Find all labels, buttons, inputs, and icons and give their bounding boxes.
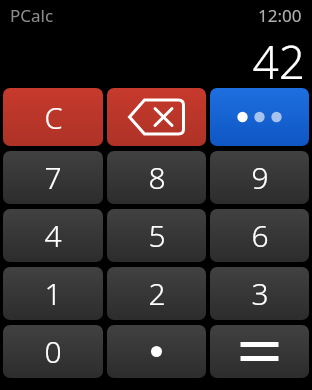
staticText: 9 (251, 157, 269, 198)
staticText: 2 (148, 273, 166, 314)
button[interactable]: 0 (3, 325, 103, 378)
button[interactable]: 8 (107, 151, 206, 204)
button[interactable]: 4 (3, 209, 103, 262)
button[interactable]: Backspace (107, 88, 206, 146)
staticText: 3 (251, 273, 269, 314)
button[interactable]: 2 (107, 267, 206, 320)
button[interactable]: C (3, 88, 103, 146)
button[interactable]: Decimal point (107, 325, 206, 378)
button[interactable]: 1 (3, 267, 103, 320)
button[interactable]: 7 (3, 151, 103, 204)
staticText: C (44, 98, 63, 137)
button[interactable]: 3 (210, 267, 309, 320)
button[interactable]: More options (210, 88, 309, 146)
staticText: PCalc (10, 4, 54, 27)
staticText: 0 (44, 331, 62, 372)
button[interactable]: 9 (210, 151, 309, 204)
staticText: 42 (252, 30, 305, 88)
staticText: 6 (251, 215, 269, 256)
staticText: 8 (148, 157, 166, 198)
staticText: 1 (44, 273, 62, 314)
staticText: 4 (44, 215, 62, 256)
button[interactable]: 5 (107, 209, 206, 262)
staticText: 7 (44, 157, 62, 198)
staticText: 5 (148, 215, 166, 256)
button[interactable]: 6 (210, 209, 309, 262)
staticText: 12:00 (258, 4, 302, 27)
button[interactable]: Equals (210, 325, 309, 378)
